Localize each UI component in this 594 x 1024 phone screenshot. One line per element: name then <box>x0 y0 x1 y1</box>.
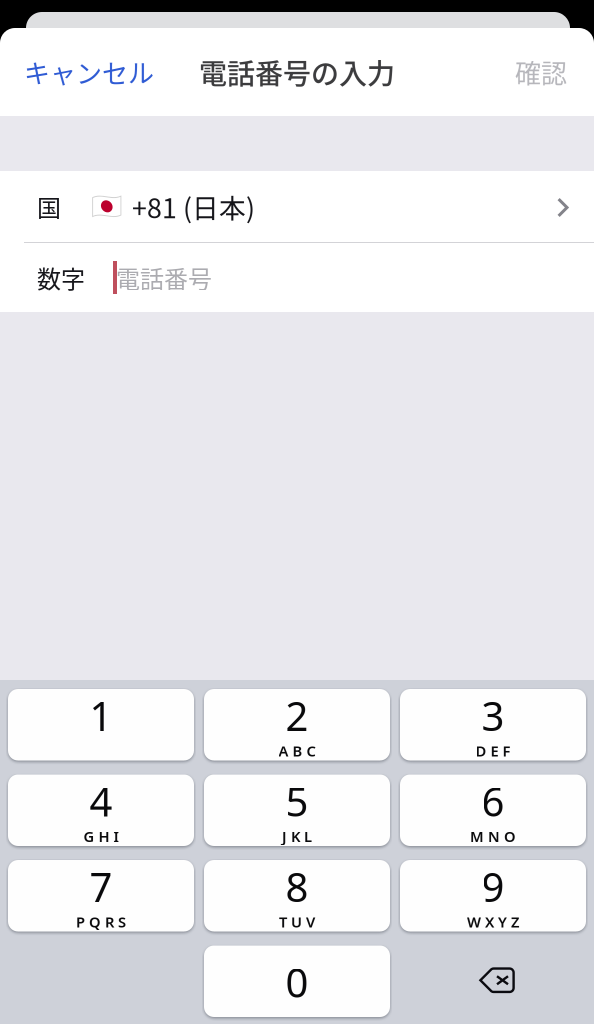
button[interactable]: 1 <box>8 689 194 760</box>
button[interactable]: 7 <box>8 860 194 931</box>
staticText: 🇯🇵 <box>91 192 123 221</box>
staticText: 9 <box>481 860 504 913</box>
button[interactable]: 確認 <box>507 39 575 105</box>
staticText: P Q R S <box>76 912 126 932</box>
staticText: A B C <box>278 741 315 761</box>
staticText: +81 (日本) <box>132 187 255 226</box>
staticText: 1 <box>89 689 112 742</box>
staticText: 4 <box>89 774 112 828</box>
staticText: 電話番号の入力 <box>199 52 395 92</box>
staticText: M N O <box>470 827 516 846</box>
staticText: 5 <box>285 774 308 828</box>
staticText: 2 <box>285 689 308 742</box>
staticText: 8 <box>285 860 308 913</box>
button[interactable]: 8 <box>204 860 390 931</box>
button[interactable]: 4 <box>8 774 194 846</box>
button[interactable]: 9 <box>400 860 586 931</box>
staticText: D E F <box>475 741 510 761</box>
staticText: W X Y Z <box>467 912 519 932</box>
button[interactable]: キャンセル <box>16 39 162 105</box>
button[interactable]: 国 <box>0 171 594 242</box>
button[interactable]: 6 <box>400 774 586 846</box>
staticText: 0 <box>285 955 308 1009</box>
staticText: 6 <box>481 774 504 828</box>
staticText: J K L <box>282 827 312 846</box>
button[interactable]: 2 <box>204 689 390 760</box>
staticText: 電話番号 <box>116 260 212 295</box>
button[interactable]: 0 <box>204 945 390 1017</box>
staticText: 7 <box>89 860 112 913</box>
button[interactable]: 5 <box>204 774 390 846</box>
staticText: 数字 <box>37 260 85 295</box>
staticText: 確認 <box>515 53 567 91</box>
button[interactable]: 3 <box>400 689 586 760</box>
staticText: T U V <box>279 912 315 932</box>
staticText: G H I <box>83 827 118 846</box>
staticText: キャンセル <box>24 53 154 91</box>
button[interactable]: Delete <box>400 945 586 1017</box>
staticText: 3 <box>481 689 504 742</box>
staticText: 国 <box>37 189 61 224</box>
